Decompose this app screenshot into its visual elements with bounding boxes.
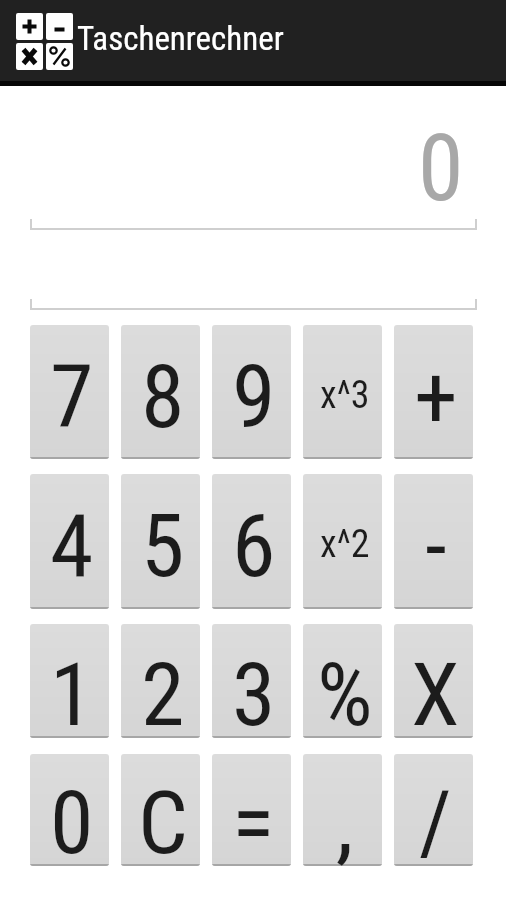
staticText: 0 <box>50 771 94 866</box>
staticText: - <box>425 494 447 597</box>
staticText: x^3 <box>320 373 370 418</box>
button[interactable]: 8 <box>121 325 200 459</box>
staticText: X <box>411 643 460 738</box>
staticText: = <box>232 771 275 866</box>
button[interactable]: 5 <box>121 474 200 609</box>
button[interactable]: X <box>394 624 473 738</box>
button[interactable]: 2 <box>121 624 200 738</box>
staticText: 7 <box>50 345 94 448</box>
button[interactable]: + <box>394 325 473 459</box>
button[interactable]: x^3 <box>303 325 382 459</box>
button[interactable]: 4 <box>30 474 109 609</box>
staticText: 0 <box>418 115 464 223</box>
button[interactable]: 6 <box>212 474 291 609</box>
button[interactable]: = <box>212 754 291 866</box>
staticText: 8 <box>141 345 185 448</box>
staticText: 5 <box>141 494 185 597</box>
button[interactable]: 9 <box>212 325 291 459</box>
button[interactable] <box>30 240 477 310</box>
button[interactable]: 1 <box>30 624 109 738</box>
staticText: 2 <box>141 643 185 738</box>
staticText: Taschenrechner <box>77 19 284 58</box>
staticText: 4 <box>50 494 94 597</box>
staticText: / <box>419 771 452 866</box>
button[interactable]: - <box>394 474 473 609</box>
staticText: 9 <box>232 345 276 448</box>
button[interactable]: / <box>394 754 473 866</box>
staticText: 3 <box>232 643 276 738</box>
button[interactable]: C <box>121 754 200 866</box>
button[interactable]: 3 <box>212 624 291 738</box>
button[interactable]: % <box>303 624 382 738</box>
button[interactable]: , <box>303 754 382 866</box>
staticText: , <box>336 771 354 866</box>
staticText: 6 <box>232 494 276 597</box>
button[interactable] <box>30 103 477 230</box>
button[interactable]: 0 <box>30 754 109 866</box>
staticText: + <box>414 345 458 448</box>
button[interactable]: 7 <box>30 325 109 459</box>
staticText: % <box>317 643 373 738</box>
staticText: C <box>138 771 188 866</box>
button[interactable]: x^2 <box>303 474 382 609</box>
staticText: 1 <box>50 643 94 738</box>
staticText: x^2 <box>320 522 370 567</box>
